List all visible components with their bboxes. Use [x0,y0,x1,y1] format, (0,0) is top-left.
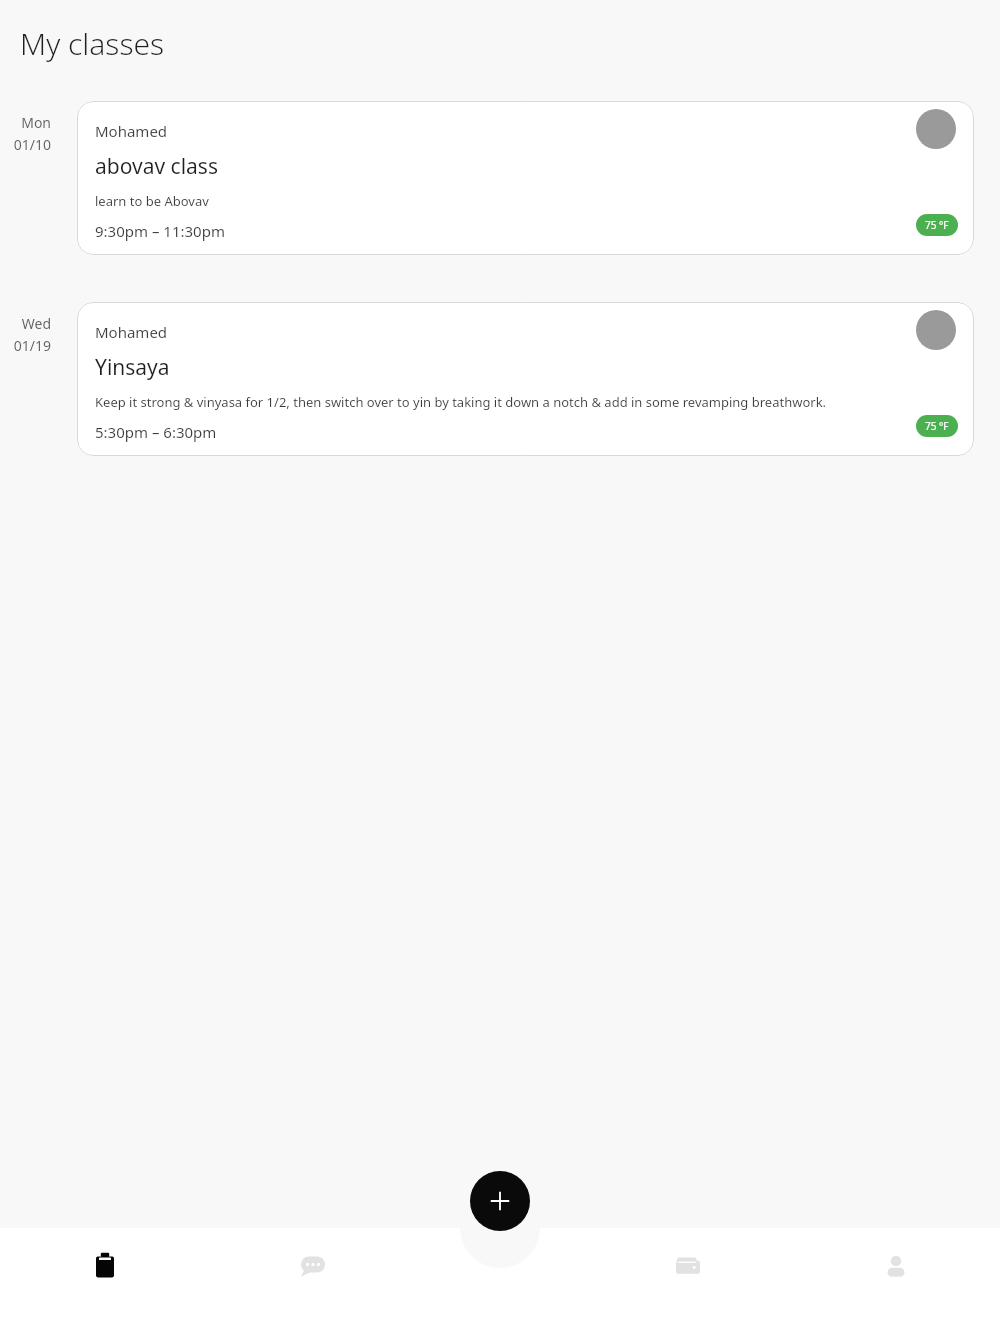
staticText: 9:30pm – 11:30pm [95,221,225,241]
staticText: Yinsaya [95,353,170,382]
button[interactable]: Teacher avatar [916,109,956,149]
staticText: Wed [21,314,51,333]
button[interactable]: Mohamed [77,302,974,456]
button[interactable]: Messages [209,1236,417,1296]
staticText: abovav class [95,152,218,181]
staticText: 75 °F [925,419,949,433]
button[interactable]: Wallet [584,1236,792,1296]
staticText: Mohamed [95,121,168,141]
staticText: 75 °F [925,218,949,232]
button[interactable]: Mohamed [77,101,974,255]
staticText: 5:30pm – 6:30pm [95,422,217,442]
button[interactable]: Teacher avatar [916,310,956,350]
staticText: 01/10 [13,135,51,154]
button[interactable]: Profile [792,1236,1000,1296]
staticText: learn to be Abovav [95,192,209,210]
button[interactable]: Classes [0,1236,209,1296]
staticText: Mohamed [95,322,168,342]
staticText: Keep it strong & vinyasa for 1/2, then s… [95,393,827,411]
staticText: 01/19 [13,336,51,355]
staticText: My classes [20,23,165,64]
staticText: Mon [21,113,51,132]
button[interactable]: Add class [470,1171,530,1231]
